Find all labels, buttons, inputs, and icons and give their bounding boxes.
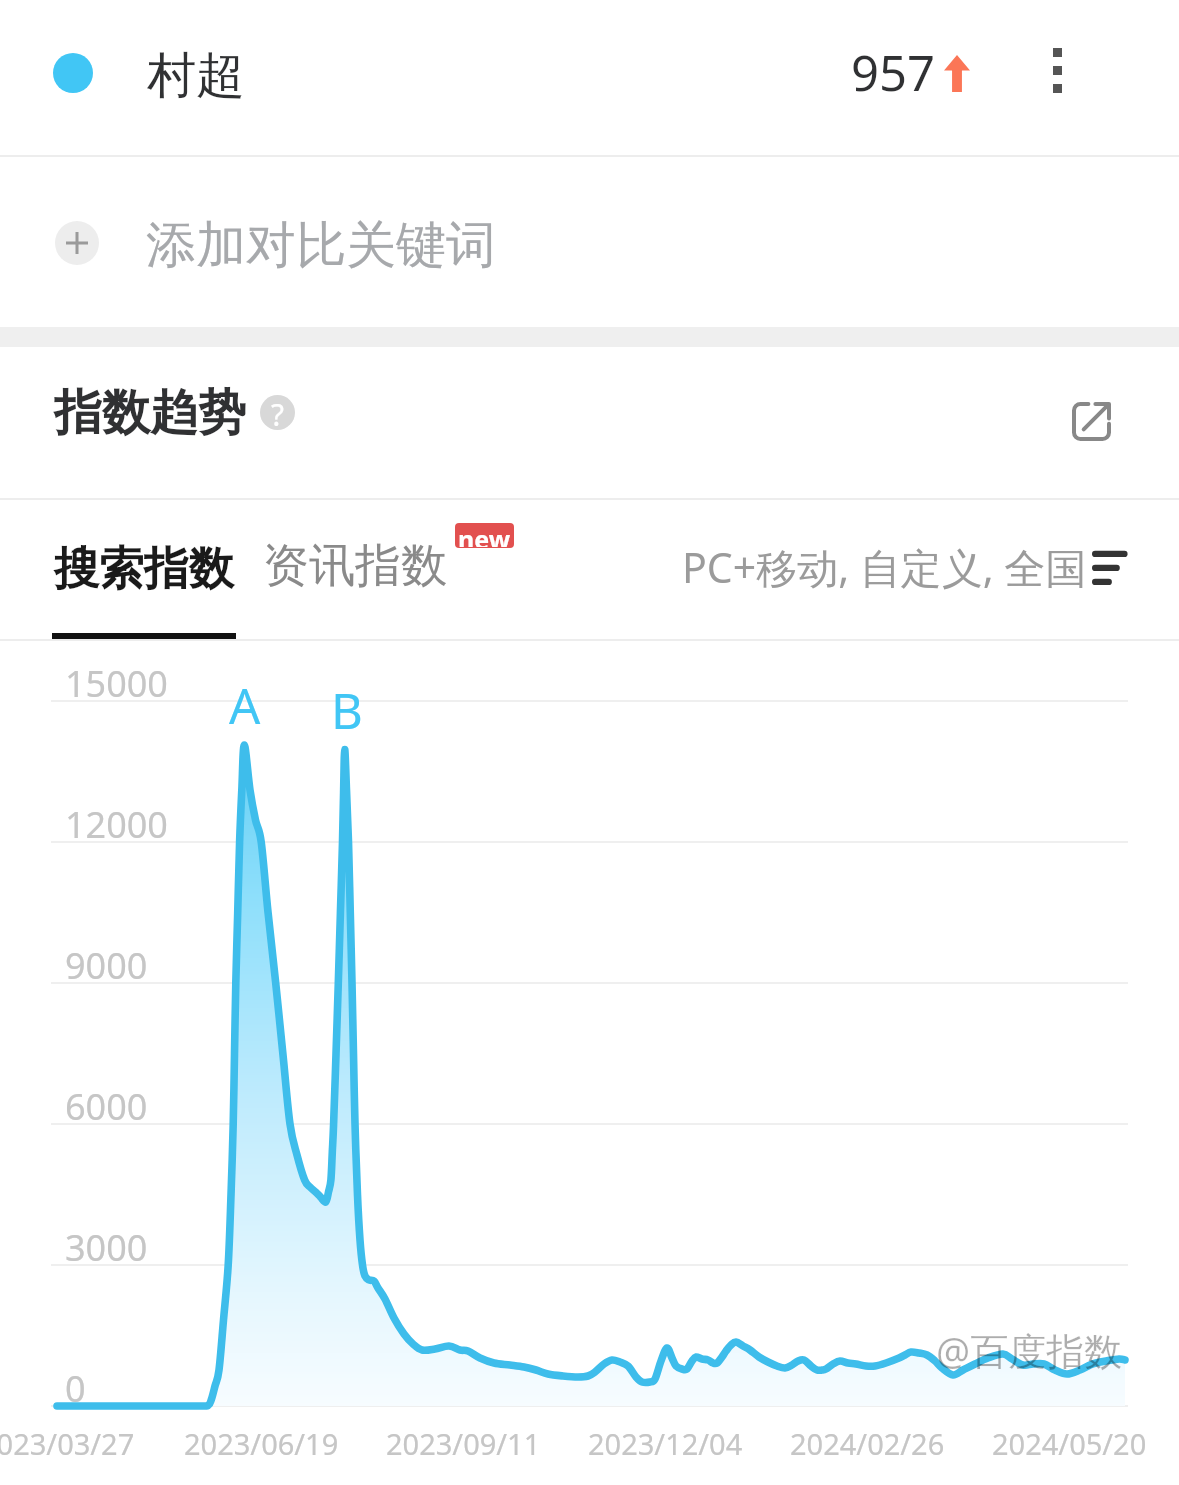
- staticText: PC+移动, 自定义, 全国: [682, 539, 1087, 595]
- staticText: 2023/03/27: [0, 1424, 135, 1463]
- button[interactable]: 搜索指数: [22, 506, 264, 634]
- staticText: 3000: [65, 1223, 148, 1272]
- staticText: 6000: [65, 1082, 148, 1131]
- button[interactable]: More options: [1018, 25, 1096, 115]
- button[interactable]: Help: [260, 395, 295, 430]
- staticText: 搜索指数: [54, 541, 234, 598]
- staticText: ?: [271, 395, 285, 429]
- staticText: new: [458, 523, 511, 547]
- staticText: @百度指数: [936, 1324, 1123, 1376]
- button[interactable]: 添加对比关键词: [0, 157, 1179, 327]
- staticText: 2024/02/26: [790, 1424, 945, 1463]
- staticText: 村超: [147, 45, 245, 107]
- staticText: 2023/09/11: [386, 1424, 541, 1463]
- staticText: 12000: [65, 800, 168, 849]
- button[interactable]: PC+移动, 自定义, 全国: [656, 517, 1128, 617]
- staticText: 9000: [65, 941, 148, 990]
- button[interactable]: 村超: [0, 0, 1179, 155]
- staticText: 2024/05/20: [992, 1424, 1147, 1463]
- staticText: 资讯指数: [263, 537, 447, 595]
- button[interactable]: 资讯指数: [260, 506, 450, 634]
- staticText: 957: [851, 39, 936, 106]
- button[interactable]: Open full screen: [1041, 371, 1141, 471]
- staticText: A: [229, 672, 261, 739]
- staticText: 15000: [65, 659, 168, 708]
- staticText: 0: [65, 1364, 86, 1413]
- staticText: B: [331, 677, 363, 744]
- staticText: 添加对比关键词: [146, 214, 496, 277]
- staticText: 指数趋势: [54, 383, 246, 443]
- staticText: 2023/06/19: [184, 1424, 339, 1463]
- staticText: 2023/12/04: [588, 1424, 743, 1463]
